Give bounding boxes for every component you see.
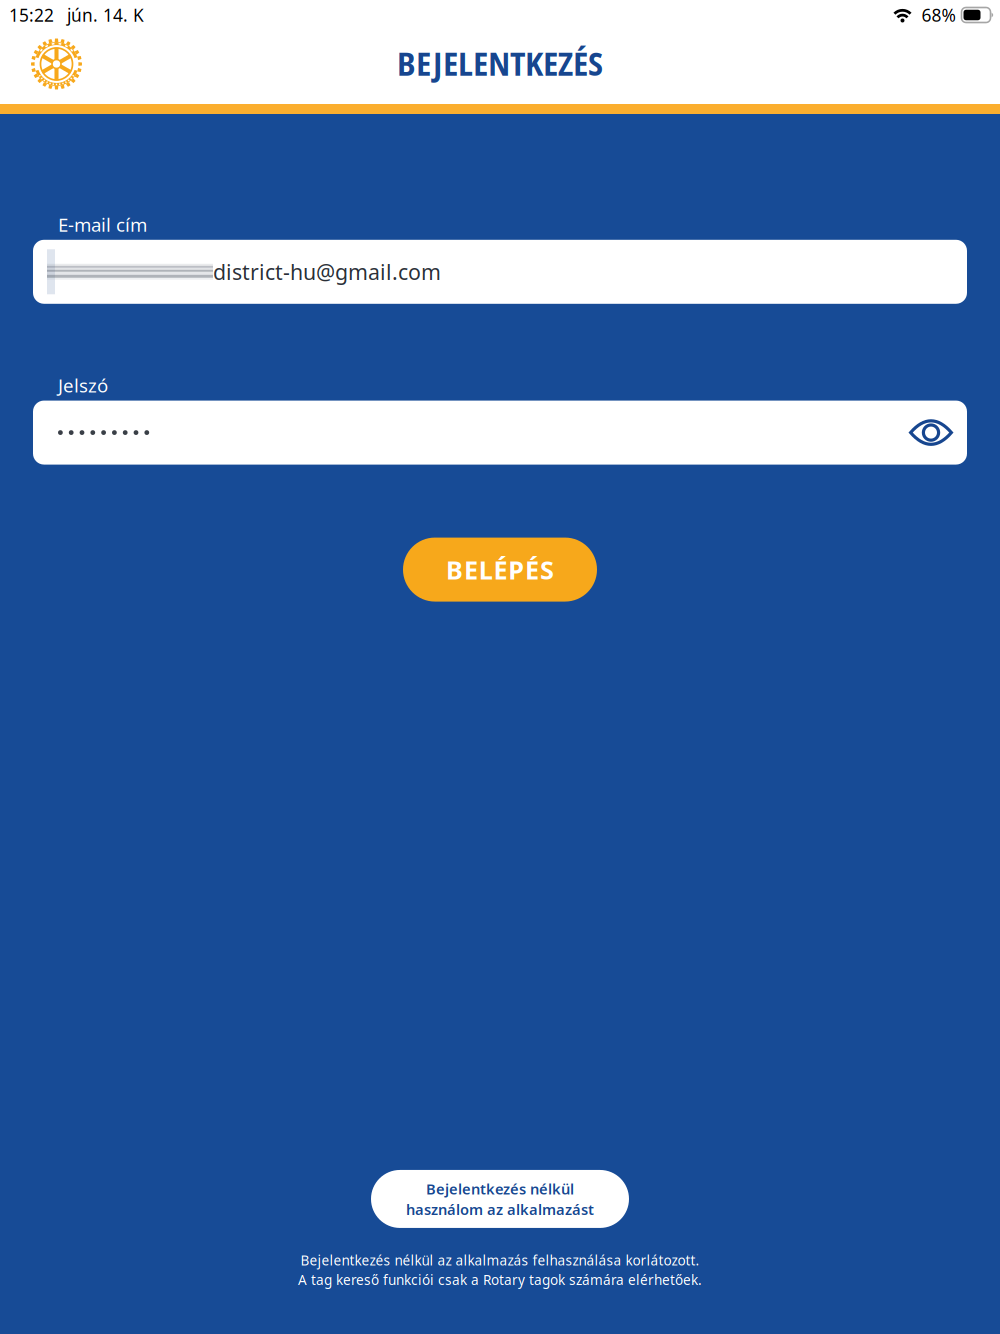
staticText: 68% [921,3,955,26]
staticText: használom az alkalmazást [406,1199,594,1219]
staticText: BELÉPÉS [446,553,554,586]
staticText: Bejelentkezés nélkül [426,1179,574,1198]
button[interactable]: BELÉPÉS [403,538,597,602]
staticText: 15:22 [9,3,54,26]
staticText: Bejelentkezés nélkül az alkalmazás felha… [300,1251,699,1269]
staticText: Jelszó [58,373,108,398]
button[interactable]: Bejelentkezés nélkül [371,1170,629,1228]
button[interactable]: Jelszó megjelenítése [895,418,967,448]
staticText: district-hu@gmail.com [213,258,441,286]
staticText: E-mail cím [58,212,147,237]
staticText: jún. 14. K [67,3,144,26]
staticText: A tag kereső funkciói csak a Rotary tago… [298,1270,702,1289]
staticText: BEJELENTKEZÉS [397,41,603,85]
